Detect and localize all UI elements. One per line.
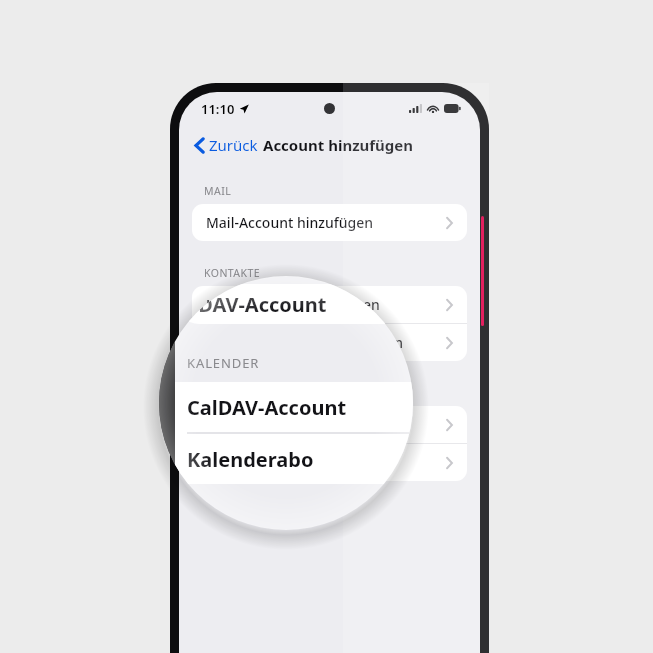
- button[interactable]: Kalenderabo hinzufügen: [175, 434, 413, 484]
- staticText: CalDAV-Account hinzufügen: [206, 415, 446, 434]
- other: Öffnen: [446, 457, 453, 469]
- staticText: KALENDER: [187, 354, 260, 372]
- button[interactable]: Zurück: [191, 130, 262, 160]
- staticText: Mail-Account hinzufügen: [206, 213, 446, 232]
- button[interactable]: CalDAV-Account hinzufügen: [175, 382, 413, 432]
- staticText: Account hinzufügen: [263, 135, 414, 155]
- staticText: Kalenderabo hinzufügen: [206, 453, 446, 472]
- staticText: Kalenderabo hinzufügen: [187, 446, 405, 473]
- staticText: CardDAV-Account hinzufügen: [206, 333, 446, 352]
- staticText: MAIL: [204, 184, 232, 198]
- staticText: CalDAV-Account hinzufügen: [187, 394, 405, 421]
- button[interactable]: Kalenderabo hinzufügen: [192, 444, 467, 481]
- staticText: KONTAKTE: [204, 266, 261, 280]
- staticText: Zurück: [209, 135, 258, 155]
- button[interactable]: Mail-Account hinzufügen: [192, 204, 467, 241]
- other: Öffnen: [446, 337, 453, 349]
- button[interactable]: CardDAV-Account hinzufügen: [192, 324, 467, 361]
- staticText: rdDAV-Account hinzufüg: [177, 291, 413, 318]
- button[interactable]: LDAP-Account hinzufügen: [192, 286, 467, 323]
- other: Öffnen: [446, 419, 453, 431]
- staticText: LDAP-Account hinzufügen: [206, 295, 446, 314]
- other: Öffnen: [446, 217, 453, 229]
- staticText: 11:10: [201, 100, 235, 118]
- button[interactable]: CalDAV-Account hinzufügen: [192, 406, 467, 443]
- other: Öffnen: [446, 299, 453, 311]
